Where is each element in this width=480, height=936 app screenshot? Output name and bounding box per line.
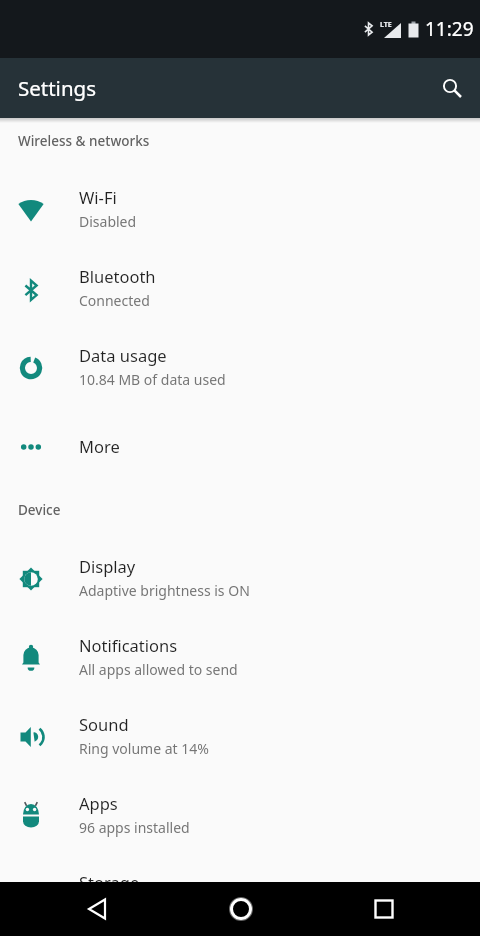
staticText: Notifications — [79, 634, 178, 656]
button[interactable]: Storage — [0, 855, 480, 882]
staticText: Sound — [79, 713, 129, 735]
button[interactable] — [432, 68, 472, 108]
staticText: Wi-Fi — [79, 186, 117, 208]
staticText: Disabled — [79, 212, 137, 231]
button[interactable]: Display — [0, 539, 480, 618]
button[interactable]: Sound — [0, 697, 480, 776]
button[interactable] — [25, 882, 169, 936]
button[interactable]: Wi-Fi — [0, 170, 480, 249]
staticText: More — [79, 435, 120, 457]
staticText: 11:29 — [425, 16, 474, 42]
staticText: 10.84 MB of data used — [79, 370, 226, 389]
staticText: Data usage — [79, 344, 167, 366]
staticText: Adaptive brightness is ON — [79, 581, 250, 600]
staticText: Wireless & networks — [18, 132, 150, 150]
staticText: Bluetooth — [79, 265, 156, 287]
staticText: Storage — [79, 871, 140, 882]
button[interactable]: Data usage — [0, 328, 480, 407]
button[interactable]: Notifications — [0, 618, 480, 697]
staticText: Connected — [79, 291, 150, 310]
button[interactable]: Bluetooth — [0, 249, 480, 328]
button[interactable] — [169, 882, 312, 936]
staticText: Device — [18, 501, 61, 519]
button[interactable] — [312, 882, 455, 936]
staticText: LTE — [380, 20, 392, 30]
staticText: Settings — [18, 74, 97, 102]
staticText: 96 apps installed — [79, 818, 190, 837]
staticText: All apps allowed to send — [79, 660, 238, 679]
button[interactable]: More — [0, 407, 480, 487]
staticText: Ring volume at 14% — [79, 739, 209, 758]
staticText: Display — [79, 555, 136, 577]
button[interactable]: Apps — [0, 776, 480, 855]
staticText: Apps — [79, 792, 118, 814]
